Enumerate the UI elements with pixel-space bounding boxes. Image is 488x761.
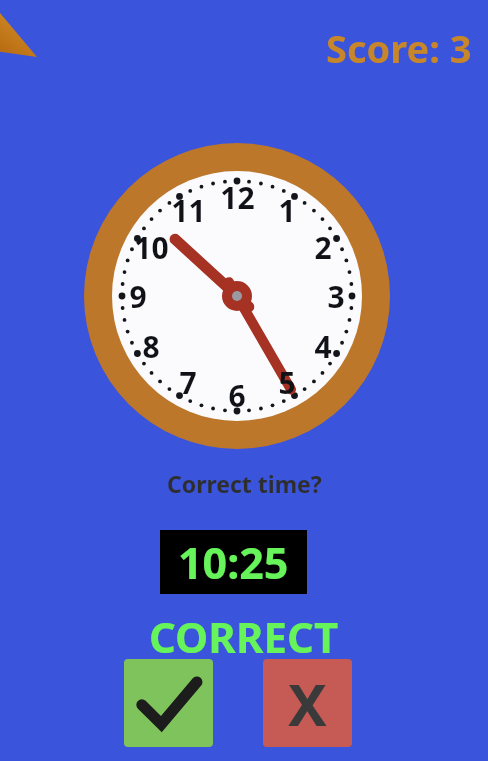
staticText: 1 bbox=[278, 190, 296, 230]
staticText: 10:25 bbox=[178, 533, 289, 592]
staticText: 2 bbox=[314, 227, 332, 267]
staticText: CORRECT bbox=[149, 608, 339, 658]
staticText: X bbox=[288, 664, 327, 743]
staticText: 11 bbox=[171, 190, 206, 230]
staticText: 8 bbox=[142, 326, 160, 366]
staticText: 4 bbox=[314, 326, 332, 366]
staticText: 5 bbox=[278, 362, 296, 402]
button[interactable]: Wrong bbox=[263, 659, 352, 747]
staticText: 3 bbox=[327, 276, 345, 316]
staticText: Score: 3 bbox=[326, 22, 472, 74]
staticText: 10 bbox=[134, 227, 169, 267]
staticText: 12 bbox=[220, 177, 255, 217]
staticText: Correct time? bbox=[167, 468, 322, 498]
staticText: 7 bbox=[179, 362, 197, 402]
staticText: 9 bbox=[129, 276, 147, 316]
button[interactable]: Correct bbox=[124, 659, 213, 747]
staticText: 6 bbox=[228, 375, 246, 415]
button[interactable]: 10:25 bbox=[160, 530, 307, 594]
